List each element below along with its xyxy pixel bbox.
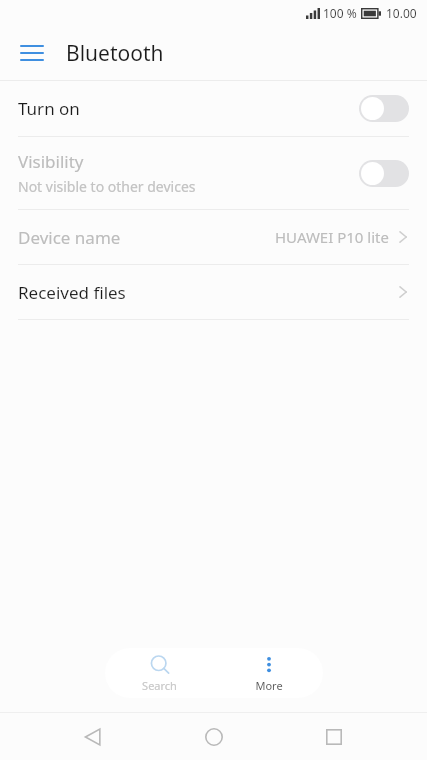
button[interactable]: Received files bbox=[0, 265, 427, 319]
button[interactable]: Home bbox=[186, 713, 242, 760]
staticText: Received files bbox=[18, 281, 126, 304]
staticText: More bbox=[255, 678, 283, 693]
button[interactable]: Back bbox=[65, 713, 121, 760]
button[interactable]: More bbox=[214, 654, 323, 693]
button[interactable]: Toggle bbox=[359, 160, 409, 187]
staticText: 10.00 bbox=[386, 5, 417, 21]
button[interactable]: Device name bbox=[0, 210, 427, 264]
button[interactable]: Visibility bbox=[0, 137, 427, 209]
button[interactable]: Recents bbox=[306, 713, 362, 760]
staticText: 100 % bbox=[323, 5, 357, 21]
button[interactable]: Menu bbox=[8, 29, 56, 77]
staticText: HUAWEI P10 lite bbox=[275, 227, 389, 247]
button[interactable]: Toggle bbox=[359, 95, 409, 122]
staticText: Not visible to other devices bbox=[18, 177, 196, 196]
staticText: Device name bbox=[18, 226, 121, 249]
staticText: Turn on bbox=[18, 97, 80, 120]
staticText: Visibility bbox=[18, 150, 84, 173]
button[interactable]: Turn on bbox=[0, 81, 427, 136]
staticText: Search bbox=[142, 678, 177, 693]
button[interactable]: Search bbox=[105, 654, 214, 693]
staticText: Bluetooth bbox=[66, 39, 164, 68]
